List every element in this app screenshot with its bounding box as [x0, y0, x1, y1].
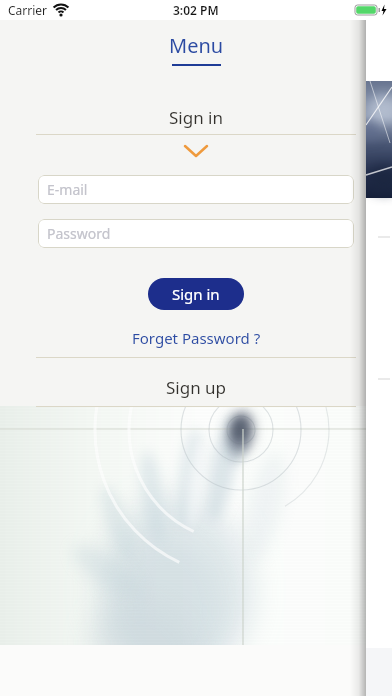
staticText: E-mail — [47, 180, 88, 199]
button[interactable]: Forget Password ? — [13, 328, 379, 348]
staticText: Sign in — [172, 284, 220, 304]
staticText: Carrier — [8, 2, 48, 18]
button[interactable]: E-mail — [38, 175, 354, 204]
staticText: 3:02 PM — [173, 2, 219, 18]
button[interactable]: Password — [38, 219, 354, 248]
button[interactable]: Sign in — [148, 278, 244, 310]
staticText: Menu — [169, 32, 224, 59]
staticText: Password — [47, 224, 111, 243]
staticText: Sign in — [169, 106, 223, 129]
staticText: Forget Password ? — [132, 328, 261, 348]
button[interactable]: Sign up — [13, 376, 379, 399]
button[interactable]: Sign in — [13, 106, 379, 129]
staticText: Sign up — [166, 376, 227, 399]
button[interactable] — [185, 145, 207, 157]
button[interactable]: Menu — [13, 32, 379, 59]
